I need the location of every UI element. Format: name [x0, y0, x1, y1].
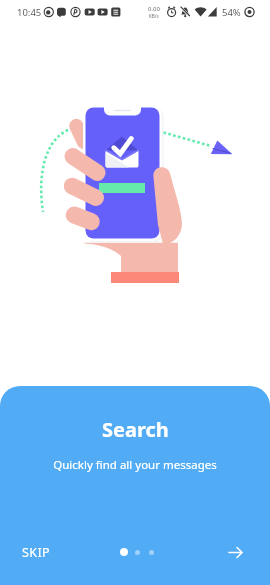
staticText: 10:45 [17, 6, 42, 19]
staticText: Search [102, 416, 169, 443]
staticText: KB/s [149, 13, 159, 19]
staticText: 0.00 [148, 5, 160, 13]
button[interactable]: Next [222, 539, 248, 565]
button[interactable] [135, 550, 140, 555]
staticText: Quickly find all your messages [53, 457, 217, 473]
button[interactable] [120, 548, 128, 556]
button[interactable]: SKIP [13, 536, 60, 569]
staticText: 54% [222, 6, 241, 19]
staticText: SKIP [22, 544, 51, 561]
button[interactable] [149, 550, 154, 555]
